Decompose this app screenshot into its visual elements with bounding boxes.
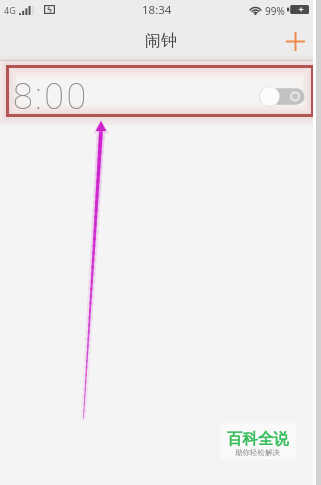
button[interactable]: Add alarm (280, 26, 310, 56)
staticText: 18:34 (142, 2, 172, 18)
staticText: 8:00 (13, 76, 89, 117)
button[interactable]: Alarm on off toggle (259, 86, 305, 107)
staticText: 4G (4, 4, 16, 16)
staticText: 99% (265, 4, 285, 18)
staticText: 助你轻松解决 (235, 448, 280, 457)
button[interactable]: 8:00 (0, 76, 321, 117)
staticText: 闹钟 (145, 31, 177, 51)
staticText: 百科全说 (227, 429, 289, 449)
